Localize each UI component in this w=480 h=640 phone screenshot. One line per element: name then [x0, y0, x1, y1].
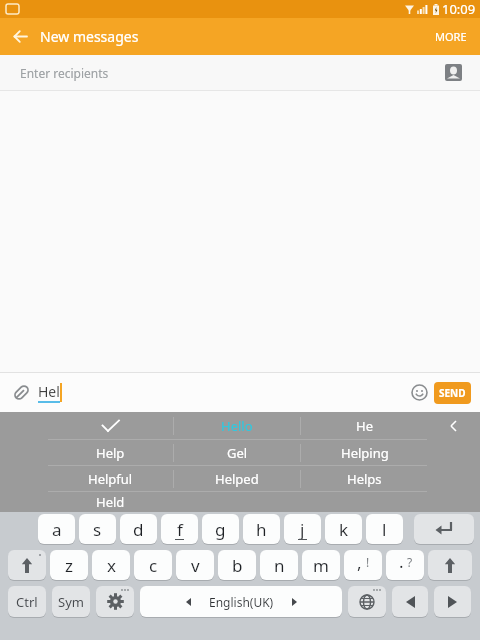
- button[interactable]: [348, 586, 386, 617]
- staticText: v: [191, 554, 200, 577]
- staticText: Help: [96, 444, 125, 462]
- staticText: ?: [407, 554, 413, 570]
- staticText: Helpful: [88, 470, 133, 488]
- button[interactable]: m: [302, 550, 340, 580]
- button[interactable]: Help: [48, 440, 173, 465]
- button[interactable]: Enter recipients: [0, 55, 480, 91]
- button[interactable]: [434, 586, 471, 617]
- staticText: k: [339, 518, 349, 541]
- button[interactable]: [8, 550, 46, 580]
- button[interactable]: [428, 412, 480, 439]
- staticText: l: [382, 518, 387, 541]
- button[interactable]: g: [202, 514, 239, 544]
- staticText: d: [133, 518, 144, 541]
- button[interactable]: n: [260, 550, 298, 580]
- button[interactable]: x: [92, 550, 130, 580]
- staticText: j: [300, 518, 305, 541]
- button[interactable]: He: [301, 412, 428, 439]
- staticText: Helping: [341, 444, 389, 462]
- button[interactable]: Hello: [174, 412, 300, 439]
- button[interactable]: Held: [48, 492, 173, 512]
- button[interactable]: k: [325, 514, 362, 544]
- button[interactable]: Gel: [174, 440, 300, 465]
- button[interactable]: .: [386, 550, 424, 580]
- staticText: ,: [357, 551, 362, 574]
- staticText: g: [215, 518, 226, 541]
- button[interactable]: f: [161, 514, 198, 544]
- staticText: Sym: [58, 593, 84, 611]
- button[interactable]: b: [218, 550, 256, 580]
- button[interactable]: SEND: [434, 382, 471, 404]
- staticText: c: [149, 554, 158, 577]
- staticText: Gel: [227, 444, 248, 462]
- button[interactable]: [0, 373, 36, 412]
- staticText: n: [274, 554, 285, 577]
- button[interactable]: j: [284, 514, 321, 544]
- button[interactable]: l: [366, 514, 403, 544]
- staticText: Hello: [221, 417, 253, 435]
- staticText: !: [366, 554, 370, 570]
- button[interactable]: a: [38, 514, 75, 544]
- button[interactable]: h: [243, 514, 280, 544]
- staticText: Helps: [347, 470, 382, 488]
- staticText: MORE: [435, 29, 467, 44]
- staticText: h: [256, 518, 267, 541]
- staticText: Held: [96, 493, 125, 511]
- button[interactable]: [408, 373, 430, 412]
- button[interactable]: Hel: [38, 382, 60, 403]
- button[interactable]: ,: [344, 550, 382, 580]
- staticText: z: [65, 554, 73, 577]
- staticText: English(UK): [209, 594, 274, 610]
- staticText: Helped: [215, 470, 259, 488]
- button[interactable]: Helpful: [48, 466, 173, 491]
- button[interactable]: z: [50, 550, 88, 580]
- button[interactable]: [48, 412, 173, 439]
- staticText: Ctrl: [16, 593, 38, 611]
- staticText: New messages: [40, 27, 139, 46]
- button[interactable]: [96, 586, 134, 617]
- staticText: f: [177, 518, 183, 541]
- button[interactable]: d: [120, 514, 157, 544]
- staticText: He: [356, 417, 373, 435]
- staticText: x: [107, 554, 116, 577]
- staticText: SEND: [439, 386, 466, 400]
- button[interactable]: c: [134, 550, 172, 580]
- staticText: a: [52, 518, 62, 541]
- staticText: .: [399, 550, 404, 573]
- staticText: Hel: [38, 382, 60, 401]
- button[interactable]: Sym: [52, 586, 90, 617]
- button[interactable]: Ctrl: [8, 586, 46, 617]
- button[interactable]: MORE: [422, 18, 480, 55]
- button[interactable]: English(UK): [140, 586, 342, 617]
- button[interactable]: [428, 550, 472, 580]
- staticText: b: [232, 554, 243, 577]
- button[interactable]: [445, 64, 462, 81]
- button[interactable]: s: [79, 514, 116, 544]
- button[interactable]: Helped: [174, 466, 300, 491]
- button[interactable]: [414, 514, 474, 544]
- staticText: m: [313, 554, 329, 577]
- button[interactable]: Helping: [301, 440, 428, 465]
- staticText: s: [93, 518, 102, 541]
- button[interactable]: [0, 18, 40, 55]
- button[interactable]: [392, 586, 428, 617]
- button[interactable]: v: [176, 550, 214, 580]
- staticText: Enter recipients: [20, 65, 109, 81]
- button[interactable]: Helps: [301, 466, 428, 491]
- staticText: 10:09: [442, 0, 476, 18]
